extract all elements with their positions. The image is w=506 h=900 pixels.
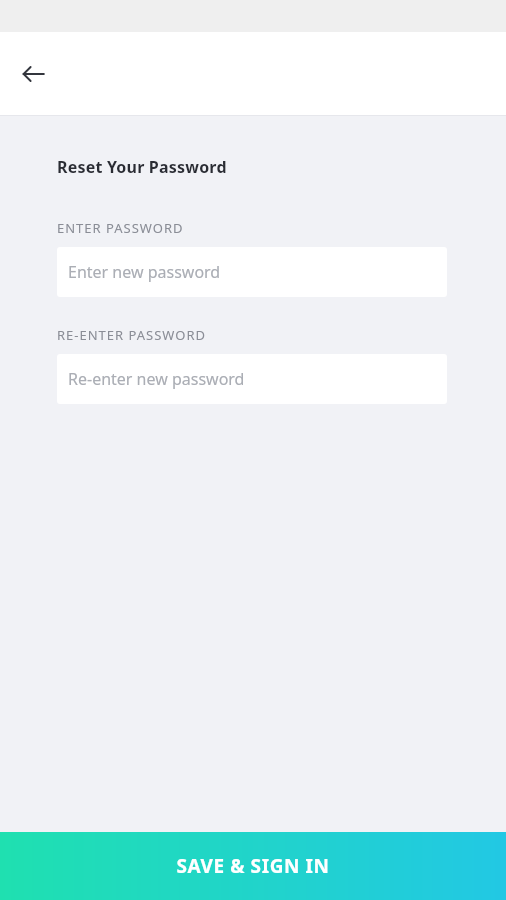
- staticText: RE-ENTER PASSWORD: [57, 326, 207, 344]
- staticText: Reset Your Password: [57, 156, 227, 178]
- button[interactable]: Back: [12, 52, 56, 96]
- staticText: Re-enter new password: [68, 368, 245, 390]
- staticText: SAVE & SIGN IN: [176, 853, 330, 879]
- button[interactable]: Enter new password: [57, 247, 447, 297]
- staticText: Enter new password: [68, 261, 221, 283]
- button[interactable]: SAVE & SIGN IN: [0, 832, 506, 900]
- button[interactable]: Re-enter new password: [57, 354, 447, 404]
- staticText: ENTER PASSWORD: [57, 219, 184, 237]
